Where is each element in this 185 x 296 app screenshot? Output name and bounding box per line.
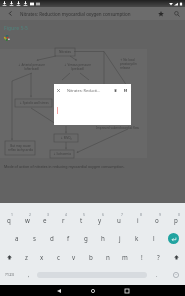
button[interactable]: Favorite	[153, 7, 169, 20]
button[interactable]: ?123	[0, 266, 20, 284]
staticText: ↓ MVO₂	[60, 136, 72, 140]
button[interactable]: Close	[54, 84, 63, 97]
staticText: r	[62, 216, 65, 224]
button[interactable]: v	[66, 248, 82, 266]
button[interactable]: 0	[166, 208, 185, 228]
staticText: But may cause reflex tachycardia	[8, 144, 33, 152]
button[interactable]: Shift	[0, 248, 18, 266]
staticText: o	[155, 216, 159, 224]
staticText: b	[89, 253, 93, 261]
button[interactable]: z	[18, 248, 34, 266]
button[interactable]: 5	[72, 208, 90, 228]
staticText: 1	[11, 212, 13, 217]
button[interactable]: Recents	[110, 285, 144, 296]
button[interactable]: Backspace	[167, 248, 185, 266]
staticText: ↑ No local prostacyclin release	[120, 58, 137, 70]
staticText: j	[119, 234, 121, 242]
button[interactable]: k	[128, 229, 145, 247]
button[interactable]: b	[82, 248, 99, 266]
staticText: 4	[65, 212, 67, 217]
button[interactable]: Delete	[110, 84, 120, 97]
button[interactable]: Home	[76, 285, 110, 296]
button[interactable]: l	[145, 229, 162, 247]
button[interactable]: x	[34, 248, 50, 266]
button[interactable]: Save	[120, 84, 131, 97]
button[interactable]: a	[8, 229, 26, 247]
staticText: 5	[83, 212, 85, 217]
staticText: d	[50, 234, 54, 242]
button[interactable]: Enter	[162, 229, 185, 247]
staticText: q	[7, 216, 11, 224]
staticText: 9	[159, 212, 161, 217]
staticText: p	[174, 216, 178, 224]
button[interactable]: h	[94, 229, 111, 247]
staticText: 6	[102, 212, 104, 217]
button[interactable]: Back	[0, 7, 20, 20]
button[interactable]: ,	[20, 266, 37, 284]
staticText: Figure 5-5	[4, 25, 28, 32]
staticText: l	[153, 234, 155, 242]
staticText: ?	[157, 253, 160, 261]
button[interactable]: Emoji	[167, 266, 185, 284]
button[interactable]: 3	[36, 208, 54, 228]
staticText: i	[137, 216, 139, 224]
staticText: 2	[29, 212, 31, 217]
button[interactable]: 1	[0, 208, 18, 228]
button[interactable]: g	[77, 229, 94, 247]
staticText: Nitrates: Reduction myocardial oxygen co…	[20, 11, 153, 17]
staticText: f	[67, 234, 70, 242]
staticText: u	[117, 216, 121, 224]
staticText: ↓ Arterial pressure (afterload)	[18, 63, 45, 71]
staticText: 0	[178, 212, 180, 217]
staticText: 3	[47, 212, 49, 217]
button[interactable]: f	[60, 229, 77, 247]
button[interactable]: Back	[42, 285, 76, 296]
staticText: k	[135, 234, 139, 242]
staticText: z	[25, 253, 28, 261]
staticText: y	[98, 216, 102, 224]
staticText: Nitrates: Reducti…	[67, 88, 110, 93]
staticText: g	[84, 234, 88, 242]
button[interactable]: Search	[169, 7, 185, 20]
button[interactable]: 6	[90, 208, 109, 228]
button[interactable]: c	[50, 248, 66, 266]
button[interactable]: d	[43, 229, 60, 247]
staticText: .	[156, 271, 158, 278]
staticText: Nitrates	[59, 50, 71, 54]
staticText: t	[80, 216, 83, 224]
button[interactable]: 9	[147, 208, 166, 228]
button[interactable]: s	[26, 229, 43, 247]
staticText: h	[101, 234, 105, 242]
staticText: !	[141, 253, 143, 261]
staticText: ↓ Ischaemia	[53, 152, 71, 156]
staticText: n	[106, 253, 110, 261]
staticText: c	[57, 253, 60, 261]
staticText: w	[25, 216, 30, 224]
button[interactable]: m	[116, 248, 133, 266]
button[interactable]: n	[99, 248, 116, 266]
button[interactable]: 2	[18, 208, 36, 228]
staticText: a	[15, 234, 19, 242]
button[interactable]: !	[133, 248, 150, 266]
staticText: e	[43, 216, 47, 224]
staticText: x	[40, 253, 44, 261]
button[interactable]: 7	[109, 208, 128, 228]
button[interactable]: 8	[128, 208, 147, 228]
staticText: v	[72, 253, 76, 261]
button[interactable]: ?	[150, 248, 167, 266]
staticText: 7	[121, 212, 123, 217]
button[interactable]: j	[111, 229, 128, 247]
staticText: 8	[140, 212, 142, 217]
staticText: Improved subendocardial flow	[96, 126, 139, 130]
staticText: ↓ Venous pressure (preload)	[64, 63, 91, 71]
staticText: ,	[28, 271, 30, 278]
staticText: m	[122, 253, 128, 261]
staticText: Mode of action of nitrates in reducing m…	[4, 164, 125, 169]
button[interactable]: 4	[54, 208, 72, 228]
staticText: ?123	[5, 272, 15, 278]
staticText: s	[33, 234, 36, 242]
staticText: ↓ Systolic wall stress	[19, 101, 49, 105]
